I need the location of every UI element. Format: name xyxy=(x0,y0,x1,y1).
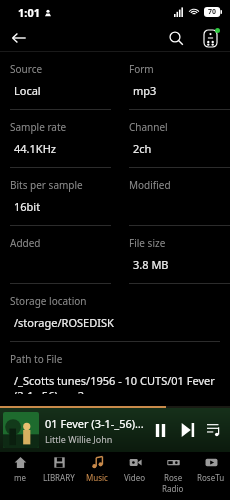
button[interactable]: me xyxy=(0,452,39,500)
staticText: Modified xyxy=(129,178,171,192)
staticText: Storage location xyxy=(10,294,87,308)
button[interactable]: Remote control xyxy=(198,26,222,50)
button[interactable]: Sample rate xyxy=(0,110,111,168)
button[interactable]: Source xyxy=(0,52,111,110)
staticText: /storage/ROSEDISK xyxy=(14,315,114,330)
staticText: Channel xyxy=(129,120,168,134)
button[interactable]: Next track xyxy=(176,418,200,442)
staticText: 2ch xyxy=(133,141,152,156)
staticText: 44.1KHz xyxy=(14,141,56,156)
button[interactable]: Form xyxy=(119,52,230,110)
staticText: Rose xyxy=(164,472,183,483)
staticText: Source xyxy=(10,62,43,76)
button[interactable]: LIBRARY xyxy=(39,452,78,500)
button[interactable]: Storage location xyxy=(0,284,230,342)
staticText: LIBRARY xyxy=(43,472,75,483)
staticText: Form xyxy=(129,62,154,76)
staticText: Added xyxy=(10,236,41,250)
staticText: Sample rate xyxy=(10,120,67,134)
button[interactable]: Video xyxy=(116,452,154,500)
button[interactable]: Pause xyxy=(148,418,172,442)
button[interactable]: Added xyxy=(0,226,111,284)
button[interactable]: Path to File xyxy=(0,342,230,394)
button[interactable]: Play queue xyxy=(202,418,226,442)
staticText: Path to File xyxy=(10,352,63,366)
staticText: mp3 xyxy=(133,83,157,98)
button[interactable]: 01 Fever (3-1-_56).mp3 xyxy=(0,408,230,452)
button[interactable]: File size xyxy=(119,226,230,284)
staticText: 3.8 MB xyxy=(133,257,169,272)
staticText: Video xyxy=(124,472,146,483)
button[interactable]: Search xyxy=(164,26,188,50)
staticText: 01 Fever (3-1-_56).mp3 xyxy=(45,416,144,431)
staticText: me xyxy=(14,472,26,483)
button[interactable]: RoseTu xyxy=(192,452,230,500)
staticText: RoseTu xyxy=(197,472,225,483)
staticText: 16bit xyxy=(14,199,41,214)
button[interactable]: Back xyxy=(6,25,32,51)
button[interactable]: Music xyxy=(78,452,116,500)
button[interactable]: Rose xyxy=(154,452,192,500)
staticText: Radio xyxy=(162,483,184,494)
staticText: Bits per sample xyxy=(10,178,83,192)
staticText: 70 xyxy=(208,7,217,17)
button[interactable]: Bits per sample xyxy=(0,168,111,226)
staticText: /_Scotts tunes/1956 - 10 CUTS/01 Fever (… xyxy=(14,373,228,394)
staticText: Local xyxy=(14,83,41,98)
button[interactable]: Modified xyxy=(119,168,230,226)
staticText: File size xyxy=(129,236,166,250)
staticText: Little Willie John xyxy=(45,433,113,445)
staticText: Music xyxy=(86,472,108,483)
button[interactable]: Channel xyxy=(119,110,230,168)
staticText: 1:01 xyxy=(18,5,40,20)
